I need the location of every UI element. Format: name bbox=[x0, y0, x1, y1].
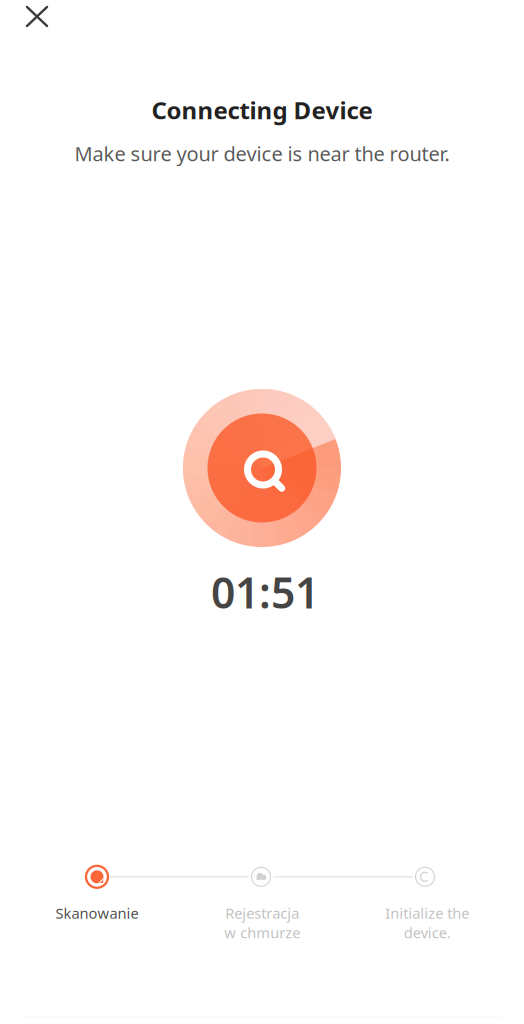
staticText: Make sure your device is near the router… bbox=[74, 140, 449, 167]
staticText: Skanowanie bbox=[55, 903, 138, 923]
button[interactable]: Close bbox=[0, 0, 63, 42]
staticText: Initialize the device. bbox=[385, 903, 469, 942]
staticText: Connecting Device bbox=[151, 94, 372, 126]
staticText: Rejestracja w chmurze bbox=[224, 903, 300, 942]
staticText: 01:51 bbox=[211, 564, 319, 620]
